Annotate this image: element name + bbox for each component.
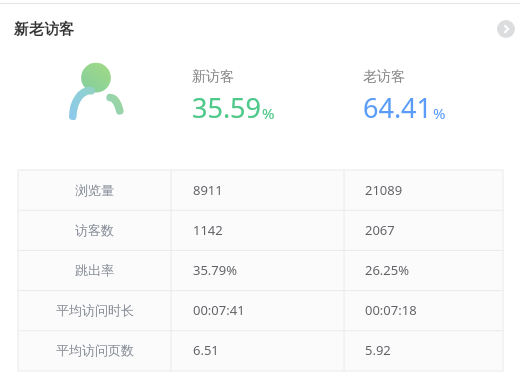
staticText: 64.41: [363, 89, 433, 126]
staticText: 8911: [193, 181, 223, 199]
staticText: 00:07:18: [365, 301, 417, 319]
button[interactable]: 平均访问页数: [18, 330, 503, 370]
button[interactable]: 平均访问时长: [18, 290, 503, 330]
staticText: 新访客: [192, 68, 234, 86]
staticText: 26.25%: [365, 261, 410, 279]
staticText: 平均访问时长: [56, 302, 134, 318]
button[interactable]: 访客数: [18, 210, 503, 250]
button[interactable]: 查看详情: [497, 20, 515, 38]
staticText: 平均访问页数: [56, 342, 134, 358]
staticText: 新老访客: [14, 20, 74, 39]
staticText: 35.59: [192, 89, 262, 126]
staticText: %: [433, 103, 446, 123]
staticText: 35.79%: [193, 261, 238, 279]
staticText: 5.92: [365, 341, 391, 359]
staticText: 浏览量: [75, 182, 114, 198]
staticText: %: [262, 103, 275, 123]
staticText: 1142: [193, 221, 223, 239]
staticText: 00:07:41: [193, 301, 245, 319]
staticText: 6.51: [193, 341, 219, 359]
button[interactable]: 浏览量: [18, 170, 503, 210]
staticText: 跳出率: [75, 262, 114, 278]
staticText: 2067: [365, 221, 395, 239]
staticText: 老访客: [363, 68, 405, 86]
staticText: 访客数: [75, 222, 114, 238]
button[interactable]: 跳出率: [18, 250, 503, 290]
staticText: 21089: [365, 181, 403, 199]
